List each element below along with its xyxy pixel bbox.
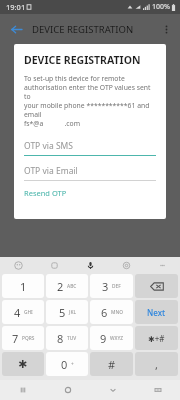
button[interactable]: Stickers [36,257,72,273]
button[interactable]: Next [135,300,178,324]
staticText: DEVICE REGISTRATION [24,53,141,67]
staticText: To set-up this device for remote authori… [24,74,156,128]
button[interactable]: 7 [2,326,44,350]
button[interactable]: More [144,257,180,273]
staticText: ✱ [18,358,28,371]
button[interactable]: 0 [46,352,88,376]
button[interactable]: 4 [2,300,44,324]
button[interactable]: More options [155,18,177,40]
button[interactable]: Voice input [72,257,108,273]
button[interactable]: # [90,352,133,376]
staticText: OTP via SMS [24,140,73,152]
staticText: 9 [100,331,107,346]
button[interactable]: Back [5,18,27,40]
staticText: GHI [24,309,33,316]
staticText: Next [147,307,166,318]
button[interactable]: 8 [46,326,88,350]
button[interactable]: OTP via Email [24,165,156,181]
staticText: 19:01 [6,2,26,12]
staticText: 8 [57,331,64,346]
button[interactable]: Resend OTP [24,188,67,198]
staticText: WXYZ [110,335,123,342]
button[interactable]: Hide keyboard [90,380,135,400]
button[interactable]: , [135,352,178,376]
button[interactable]: ✱+# [135,326,178,350]
button[interactable]: Backspace [135,274,178,298]
button[interactable]: Emoji [0,257,36,273]
staticText: DEVICE REGISTRATION [32,23,134,36]
staticText: 100% [152,2,170,12]
staticText: PQRS [22,335,35,342]
staticText: MNO [111,309,123,316]
button[interactable]: Settings [108,257,144,273]
staticText: Resend OTP [24,188,67,198]
button[interactable]: Switch keyboard [135,380,180,400]
button[interactable]: Home [45,380,90,400]
staticText: 4 [14,305,21,320]
staticText: ✱+# [148,333,165,344]
button[interactable]: 2 [46,274,88,298]
staticText: # [108,357,116,372]
button[interactable]: 9 [90,326,133,350]
staticText: ABC [67,283,77,290]
button[interactable]: 5 [46,300,88,324]
staticText: 7 [12,331,19,346]
button[interactable]: Recents [0,380,45,400]
button[interactable]: 1 [2,274,44,298]
staticText: TUV [67,335,77,342]
button[interactable]: OTP via SMS [24,140,156,156]
staticText: 1 [20,279,27,294]
staticText: OTP via Email [24,165,78,177]
staticText: , [155,357,158,372]
button[interactable]: 6 [90,300,133,324]
staticText: DEF [112,283,121,290]
staticText: JKL [69,309,76,316]
staticText: 2 [57,279,64,294]
staticText: 6 [101,305,108,320]
staticText: 5 [59,305,66,320]
staticText: + [71,361,74,368]
button[interactable]: ✱ [2,352,44,376]
staticText: 3 [102,279,109,294]
button[interactable]: 3 [90,274,133,298]
staticText: 0 [61,357,68,372]
